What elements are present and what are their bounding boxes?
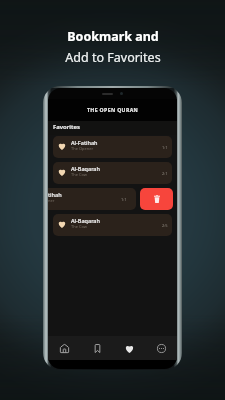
staticText: The Opener (71, 146, 94, 151)
staticText: 1:1 (162, 145, 168, 150)
button[interactable]: Al-Fatihah (53, 136, 172, 158)
staticText: 2:5 (162, 223, 168, 228)
staticText: The Cow (71, 172, 88, 177)
button[interactable]: Bookmarks (81, 336, 113, 360)
staticText: 2:1 (162, 171, 168, 176)
staticText: Al-Baqarah (71, 217, 100, 224)
button[interactable]: Delete (140, 188, 173, 210)
button[interactable]: Al-Baqarah (53, 214, 172, 236)
staticText: THE OPEN QURAN (87, 106, 139, 113)
button[interactable]: Favorites (113, 336, 145, 360)
button[interactable]: Home (48, 336, 81, 360)
staticText: The Cow (71, 224, 88, 229)
button[interactable]: Al-Baqarah (53, 162, 172, 184)
staticText: 1:1 (121, 197, 127, 202)
staticText: Al-Fatihah (71, 139, 98, 146)
button[interactable]: More (145, 336, 177, 360)
staticText: Bookmark and (67, 28, 159, 45)
staticText: Favorites (53, 123, 80, 131)
staticText: Al-Baqarah (71, 165, 100, 172)
staticText: Add to Favorites (65, 49, 161, 66)
staticText: ner (48, 198, 55, 203)
staticText: tihah (48, 191, 62, 198)
button[interactable]: tihah (48, 188, 136, 210)
